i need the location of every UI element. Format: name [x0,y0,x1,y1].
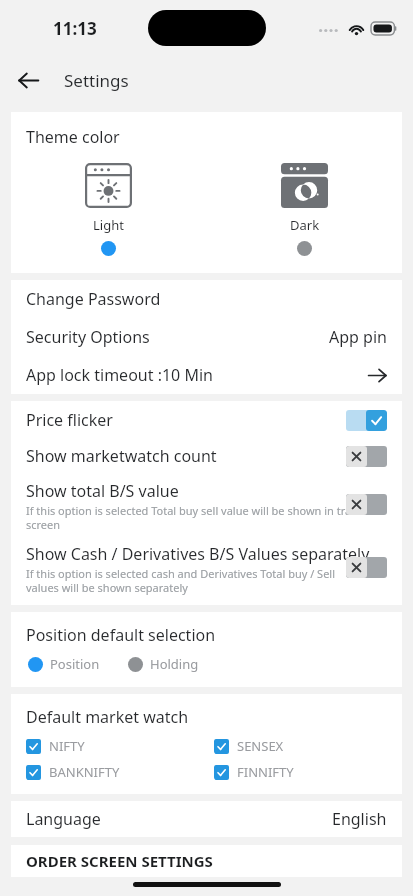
button[interactable]: NIFTY [26,737,85,755]
staticText: FINNIFTY [237,763,294,781]
staticText: Price flicker [26,409,113,431]
button[interactable]: Show marketwatch count [11,439,402,473]
button[interactable]: Holding [126,653,201,675]
button[interactable]: Off [346,557,387,578]
button[interactable]: Off [346,446,387,467]
staticText: Language [26,808,101,830]
button[interactable]: App lock timeout :10 Min [11,356,402,394]
staticText: SENSEX [237,737,284,755]
staticText: English [332,808,387,830]
staticText: Theme color [26,126,120,148]
staticText: App lock timeout :10 Min [26,364,213,386]
button[interactable]: FINNIFTY [214,763,294,781]
button[interactable]: BANKNIFTY [26,763,120,781]
staticText: Position default selection [26,624,216,646]
staticText: NIFTY [49,737,85,755]
staticText: Position [50,655,100,673]
staticText: Holding [150,655,199,673]
button[interactable]: Off [346,494,387,515]
button[interactable]: Position [26,653,102,675]
button[interactable]: Price flicker [11,401,402,439]
button[interactable]: Security Options [11,318,402,356]
staticText: ORDER SCREEN SETTINGS [26,851,213,871]
staticText: Light [93,216,124,234]
staticText: Dark [290,216,320,234]
staticText: Security Options [26,326,150,348]
button[interactable]: Change Password [11,280,402,318]
staticText: Settings [64,69,129,92]
staticText: Default market watch [26,706,189,728]
button[interactable]: Back [9,61,47,99]
button[interactable]: Show total B/S value [11,473,402,536]
staticText: 11:13 [53,17,97,40]
button[interactable]: Light [69,161,148,258]
button[interactable]: Language [11,801,402,837]
staticText: If this option is selected cash and Deri… [26,566,365,595]
staticText: Show total B/S value [26,480,179,502]
staticText: BANKNIFTY [49,763,120,781]
button[interactable]: SENSEX [214,737,284,755]
staticText: Change Password [26,288,161,310]
button[interactable]: On [346,410,387,431]
button[interactable]: Dark [265,161,344,258]
button[interactable]: Show Cash / Derivatives B/S Values separ… [11,536,402,599]
staticText: Show marketwatch count [26,445,217,467]
staticText: If this option is selected Total buy sel… [26,503,365,532]
staticText: App pin [329,326,387,348]
staticText: Show Cash / Derivatives B/S Values separ… [26,543,370,565]
